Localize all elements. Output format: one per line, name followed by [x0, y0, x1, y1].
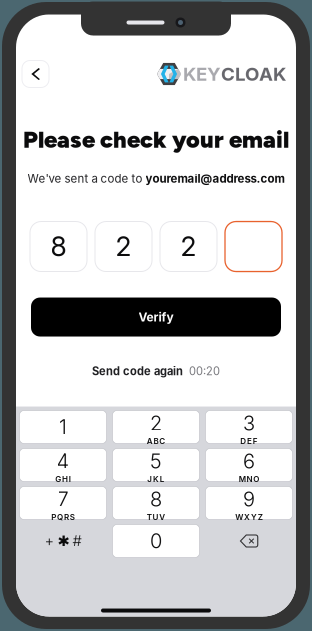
- staticText: We've sent a code to: [27, 172, 145, 186]
- staticText: 7: [57, 487, 68, 511]
- staticText: 3: [243, 411, 255, 435]
- staticText: 9: [243, 487, 255, 511]
- staticText: 2: [115, 230, 131, 263]
- button[interactable]: Verify: [31, 297, 281, 336]
- button[interactable]: 0: [112, 524, 199, 557]
- staticText: MNO: [239, 474, 259, 484]
- staticText: GHI: [55, 474, 71, 484]
- button[interactable]: Delete: [205, 524, 292, 557]
- staticText: 4: [56, 449, 69, 473]
- button[interactable]: 6: [205, 448, 292, 481]
- staticText: DEF: [240, 436, 258, 446]
- staticText: 0: [150, 529, 162, 553]
- button[interactable]: 8: [112, 486, 199, 519]
- button[interactable]: 9: [205, 486, 292, 519]
- staticText: youremail@address.com: [145, 172, 284, 186]
- staticText: CLOAK: [221, 63, 286, 85]
- button[interactable]: Send code again: [92, 364, 220, 378]
- staticText: WXYZ: [235, 512, 263, 522]
- staticText: + ✱ #: [44, 532, 81, 550]
- button[interactable]: 5: [112, 448, 199, 481]
- staticText: Verify: [138, 310, 173, 324]
- button[interactable]: [225, 221, 282, 271]
- staticText: ABC: [147, 436, 165, 446]
- staticText: 8: [150, 487, 162, 511]
- staticText: KEY: [183, 63, 221, 85]
- staticText: 5: [150, 449, 162, 473]
- staticText: 00:20: [189, 364, 220, 378]
- staticText: 2: [180, 230, 196, 263]
- staticText: JKL: [147, 474, 165, 484]
- button[interactable]: 4: [19, 448, 106, 481]
- button[interactable]: + ✱ #: [19, 524, 106, 557]
- staticText: Send code again: [92, 364, 183, 378]
- button[interactable]: 3: [205, 410, 292, 443]
- staticText: 2: [150, 411, 162, 435]
- staticText: Please check your email: [23, 125, 289, 154]
- staticText: 8: [50, 230, 66, 263]
- button[interactable]: 2: [95, 221, 152, 271]
- staticText: 1: [59, 415, 67, 439]
- button[interactable]: 2: [160, 221, 217, 271]
- staticText: TUV: [147, 512, 165, 522]
- button[interactable]: 2: [112, 410, 199, 443]
- button[interactable]: 8: [30, 221, 87, 271]
- button[interactable]: 1: [19, 410, 106, 443]
- button[interactable]: 7: [19, 486, 106, 519]
- button[interactable]: Back: [22, 60, 49, 87]
- staticText: 6: [243, 449, 255, 473]
- staticText: PQRS: [51, 512, 75, 522]
